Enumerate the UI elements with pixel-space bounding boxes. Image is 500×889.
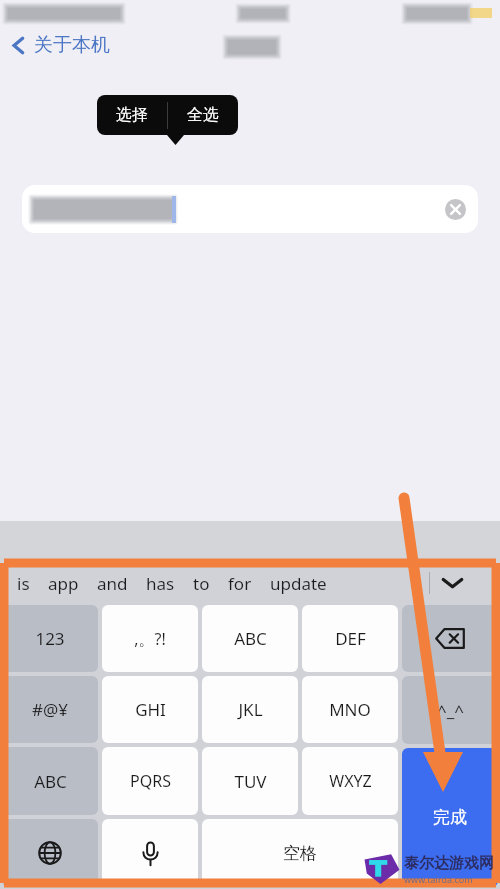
staticText: ^_^ [437, 699, 464, 722]
staticText: WXYZ [329, 770, 372, 792]
button[interactable]: ,。?! [102, 605, 198, 672]
staticText: DEF [335, 627, 366, 650]
button[interactable]: Voice input [102, 819, 198, 887]
staticText: 选择 [116, 105, 148, 125]
staticText: GHI [135, 698, 166, 721]
button[interactable]: Clear text [22, 185, 478, 233]
staticText: 泰尔达游戏网 [404, 854, 494, 873]
button[interactable]: 完成 [402, 748, 498, 887]
staticText: 关于本机 [34, 33, 110, 57]
staticText: ABC [34, 770, 67, 793]
button[interactable]: JKL [202, 676, 298, 743]
button[interactable]: ABC [2, 747, 98, 815]
button[interactable]: Back [0, 28, 124, 62]
button[interactable]: Hide keyboard [400, 563, 500, 603]
button[interactable]: TUV [202, 747, 298, 815]
button[interactable]: 选择 [97, 95, 167, 135]
other: Back [12, 36, 25, 55]
button[interactable]: GHI [102, 676, 198, 743]
button[interactable]: DEF [302, 605, 398, 672]
staticText: TUV [234, 770, 267, 793]
staticText: is [17, 572, 30, 595]
button[interactable]: update [261, 566, 336, 601]
button[interactable]: Clear text [445, 199, 466, 220]
staticText: #@¥ [32, 698, 68, 721]
button[interactable]: and [88, 566, 137, 601]
button[interactable]: 空格 [202, 819, 398, 887]
button[interactable]: has [137, 566, 184, 601]
staticText: and [97, 572, 128, 595]
button[interactable]: for [219, 566, 261, 601]
button[interactable]: ABC [202, 605, 298, 672]
staticText: app [48, 572, 79, 595]
staticText: PQRS [130, 770, 171, 792]
button[interactable]: Switch language [2, 819, 98, 887]
button[interactable]: to [184, 566, 219, 601]
button[interactable]: #@¥ [2, 676, 98, 743]
button[interactable]: PQRS [102, 747, 198, 815]
button[interactable]: MNO [302, 676, 398, 743]
staticText: MNO [329, 698, 371, 721]
staticText: www.tairda.com [404, 873, 473, 885]
staticText: 完成 [433, 807, 467, 828]
button[interactable]: ^_^ [402, 676, 498, 744]
button[interactable]: app [39, 566, 88, 601]
button[interactable]: WXYZ [302, 747, 398, 815]
staticText: has [146, 572, 175, 595]
staticText: 全选 [187, 105, 219, 125]
staticText: update [270, 572, 327, 595]
button[interactable]: 123 [2, 605, 98, 672]
button[interactable]: Delete [402, 605, 498, 672]
button[interactable]: is [8, 566, 39, 601]
staticText: to [193, 572, 210, 595]
staticText: ABC [234, 627, 267, 650]
staticText: ,。?! [134, 628, 166, 650]
staticText: 空格 [283, 843, 317, 864]
staticText: 123 [35, 627, 65, 650]
staticText: JKL [238, 698, 263, 721]
button[interactable]: 全选 [168, 95, 238, 135]
staticText: for [228, 572, 252, 595]
